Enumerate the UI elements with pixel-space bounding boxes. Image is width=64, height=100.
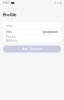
staticText: 9:41: [3, 1, 10, 5]
staticText: Address: [6, 39, 17, 42]
staticText: Phone: [6, 35, 16, 39]
staticText: ıl ≋ ▮: [54, 1, 61, 5]
staticText: Email: [6, 30, 12, 34]
staticText: Profile: [3, 12, 16, 17]
staticText: you@x.com: [43, 30, 58, 34]
staticText: Save Changes: [22, 47, 42, 51]
button[interactable]: Save Changes: [3, 45, 61, 52]
staticText: Name: [6, 24, 13, 27]
